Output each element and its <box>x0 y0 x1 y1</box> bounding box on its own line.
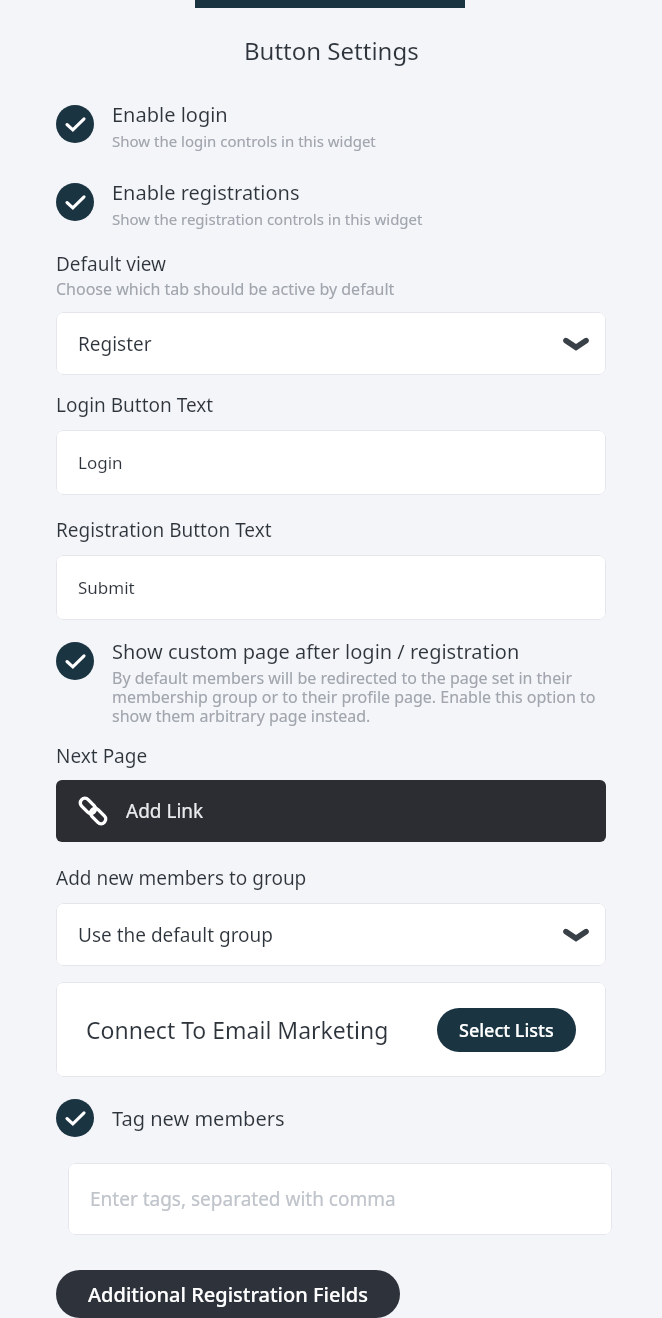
staticText: Use the default group <box>78 922 274 948</box>
staticText: Default view <box>56 251 167 277</box>
button[interactable]: Checkbox, checked <box>56 642 94 680</box>
button[interactable]: Checkbox, checked <box>0 1099 662 1137</box>
staticText: By default members will be redirected to… <box>112 667 622 727</box>
staticText: Registration Button Text <box>56 517 272 543</box>
button[interactable]: Checkbox, checked <box>56 183 94 221</box>
button[interactable]: Add Link <box>56 780 606 842</box>
staticText: Next Page <box>56 743 148 769</box>
button[interactable]: Login <box>56 430 606 495</box>
staticText: Show custom page after login / registrat… <box>112 638 520 665</box>
staticText: Button Settings <box>244 34 419 67</box>
button[interactable]: Checkbox, checked <box>0 183 662 233</box>
staticText: Login Button Text <box>56 392 214 418</box>
staticText: Register <box>78 331 152 357</box>
button[interactable]: Enter tags, separated with comma <box>68 1163 612 1235</box>
button[interactable]: Checkbox, checked <box>56 105 94 143</box>
button[interactable]: Checkbox, checked <box>0 105 662 155</box>
staticText: Tag new members <box>112 1105 285 1132</box>
button[interactable]: Checkbox, checked <box>0 642 662 731</box>
button[interactable]: Submit <box>56 555 606 620</box>
button[interactable]: Register <box>56 312 606 375</box>
staticText: Enable login <box>112 101 228 128</box>
staticText: Add Link <box>126 798 204 824</box>
staticText: Show the login controls in this widget <box>112 131 376 151</box>
button[interactable]: Additional Registration Fields <box>56 1270 400 1318</box>
staticText: Submit <box>78 576 135 599</box>
staticText: Add new members to group <box>56 865 307 891</box>
button[interactable]: Checkbox, checked <box>56 1099 94 1137</box>
staticText: Login <box>78 451 123 474</box>
staticText: Connect To Email Marketing <box>86 1014 389 1045</box>
staticText: Enter tags, separated with comma <box>90 1186 396 1212</box>
staticText: Additional Registration Fields <box>88 1281 368 1308</box>
staticText: Select Lists <box>459 1018 554 1043</box>
button[interactable]: Use the default group <box>56 903 606 966</box>
staticText: Enable registrations <box>112 179 300 206</box>
staticText: Choose which tab should be active by def… <box>56 278 395 300</box>
button[interactable]: Select Lists <box>437 1008 576 1052</box>
staticText: Show the registration controls in this w… <box>112 209 423 229</box>
